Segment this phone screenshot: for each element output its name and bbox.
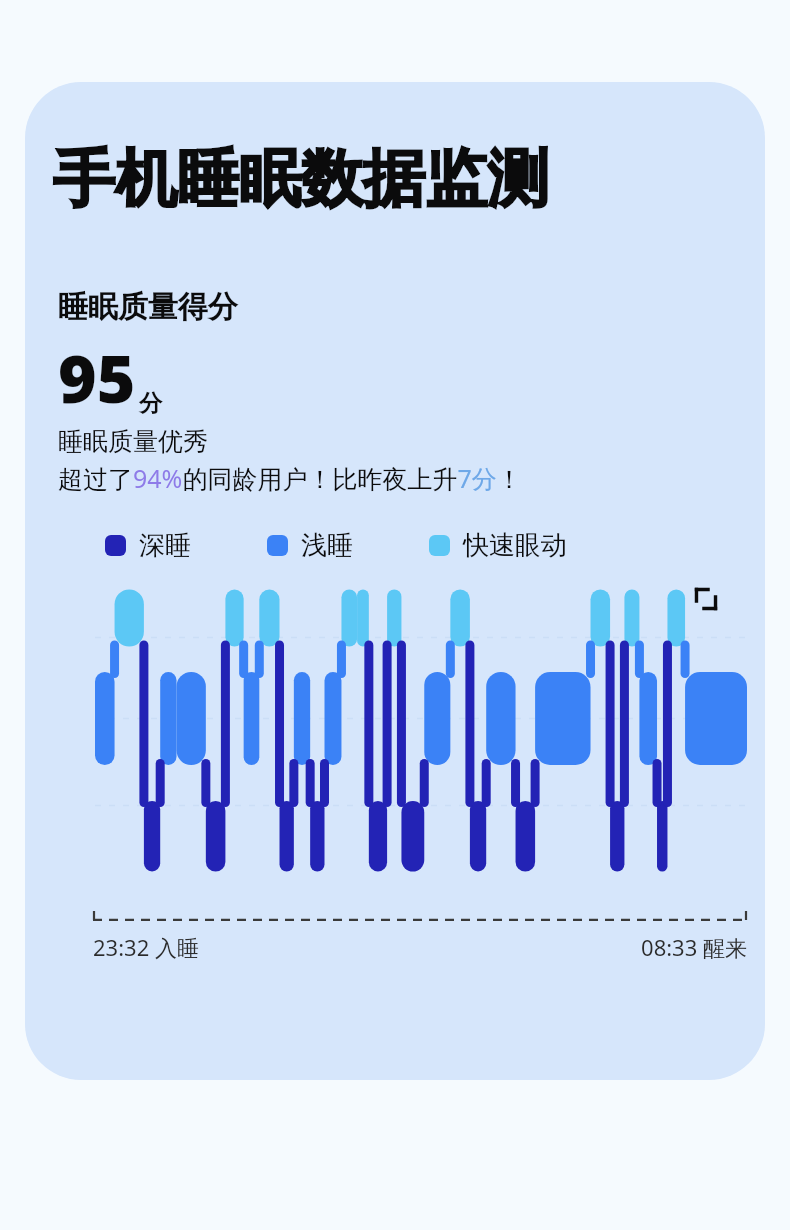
- staticText: 睡眠质量得分: [58, 288, 238, 326]
- button[interactable]: 快速眼动: [429, 529, 567, 562]
- staticText: 08:33 醒来: [641, 932, 747, 962]
- staticText: 浅睡: [301, 529, 353, 562]
- staticText: 睡眠质量优秀: [58, 426, 208, 457]
- staticText: 手机睡眠数据监测: [53, 140, 549, 218]
- staticText: 深睡: [139, 529, 191, 562]
- button[interactable]: 浅睡: [267, 529, 353, 562]
- button[interactable]: Expand chart: [689, 582, 723, 616]
- staticText: 23:32 入睡: [93, 932, 199, 962]
- staticText: 95: [58, 332, 136, 422]
- staticText: 分: [139, 389, 162, 418]
- button[interactable]: 深睡: [105, 529, 191, 562]
- staticText: 超过了94%的同龄用户！比昨夜上升7分！: [58, 461, 522, 495]
- staticText: 快速眼动: [463, 529, 567, 562]
